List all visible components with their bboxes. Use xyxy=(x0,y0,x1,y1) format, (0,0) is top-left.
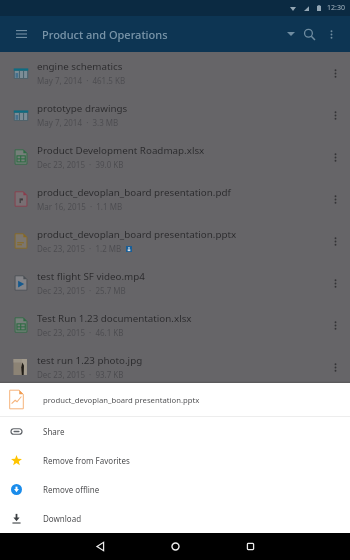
button[interactable]: More options for Test Run 1.23 documenta… xyxy=(320,304,350,346)
button[interactable]: Navigation menu xyxy=(6,19,36,49)
staticText: Product Development Roadmap.xlsx xyxy=(37,144,205,157)
button[interactable]: More options for test run 1.23 photo.jpg xyxy=(320,346,350,388)
button[interactable]: prototype drawings xyxy=(0,94,350,136)
staticText: Mar 16, 2015 · 1.1 MB xyxy=(37,201,123,212)
button[interactable]: Sort xyxy=(279,22,303,46)
staticText: engine schematics xyxy=(37,60,123,73)
staticText: Test Run 1.23 documentation.xlsx xyxy=(37,312,192,325)
button[interactable]: Remove offline xyxy=(0,475,350,504)
button[interactable]: Download xyxy=(0,504,350,533)
button[interactable]: Product Development Roadmap.xlsx xyxy=(0,136,350,178)
staticText: product_devoplan_board presentation.pdf xyxy=(37,186,231,199)
button[interactable]: More options for prototype drawings xyxy=(320,94,350,136)
staticText: Dec 23, 2015 · 39.0 KB xyxy=(37,159,124,170)
staticText: test flight SF video.mp4 xyxy=(37,270,145,283)
button[interactable]: product_devoplan_board presentation.pdf xyxy=(0,178,350,220)
staticText: Remove offline xyxy=(43,484,100,495)
button[interactable]: More options for Product Development Roa… xyxy=(320,136,350,178)
button[interactable]: test flight SF video.mp4 xyxy=(0,262,350,304)
button[interactable]: product_devoplan_board presentation.pptx xyxy=(0,383,350,416)
button[interactable]: Home xyxy=(162,533,189,560)
staticText: May 7, 2014 · 3.3 MB xyxy=(37,117,119,128)
button[interactable]: Recents xyxy=(237,533,264,560)
staticText: May 7, 2014 · 461.5 KB xyxy=(37,75,126,86)
staticText: product_devoplan_board presentation.pptx xyxy=(43,395,200,405)
staticText: product_devoplan_board presentation.pptx xyxy=(37,228,237,241)
staticText: Product and Operations xyxy=(42,27,168,42)
button[interactable]: Share xyxy=(0,417,350,446)
button[interactable]: Remove from Favorites xyxy=(0,446,350,475)
button[interactable]: More options xyxy=(319,22,343,46)
button[interactable]: product_devoplan_board presentation.pptx xyxy=(0,220,350,262)
staticText: test run 1.23 photo.jpg xyxy=(37,354,143,367)
staticText: prototype drawings xyxy=(37,102,128,115)
staticText: Dec 23, 2015 · 25.7 MB xyxy=(37,285,126,296)
staticText: Remove from Favorites xyxy=(43,455,130,466)
button[interactable]: Back xyxy=(87,533,114,560)
button[interactable]: Test Run 1.23 documentation.xlsx xyxy=(0,304,350,346)
staticText: Dec 23, 2015 · 93.7 KB xyxy=(37,369,124,380)
staticText: 12:30 xyxy=(327,3,345,13)
staticText: Share xyxy=(43,426,65,437)
staticText: Download xyxy=(43,513,82,524)
staticText: Dec 23, 2015 · 46.1 KB xyxy=(37,327,124,338)
button[interactable]: More options for product_devoplan_board … xyxy=(320,220,350,262)
button[interactable]: More options for engine schematics xyxy=(320,52,350,94)
button[interactable]: Search xyxy=(297,22,321,46)
button[interactable]: engine schematics xyxy=(0,52,350,94)
button[interactable]: More options for product_devoplan_board … xyxy=(320,178,350,220)
button[interactable]: test run 1.23 photo.jpg xyxy=(0,346,350,388)
staticText: Dec 23, 2015 · 1.2 MB xyxy=(37,243,122,254)
button[interactable]: More options for test flight SF video.mp… xyxy=(320,262,350,304)
